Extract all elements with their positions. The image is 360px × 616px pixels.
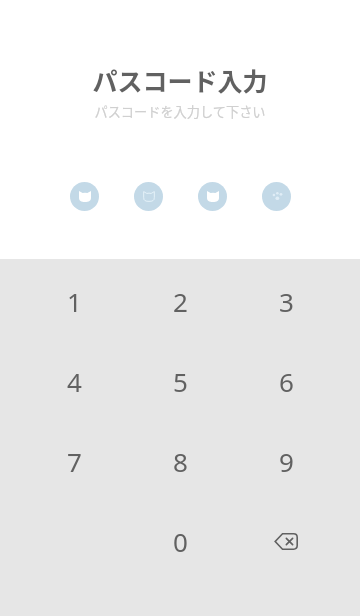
staticText: 8 (173, 444, 188, 479)
staticText: パスコード入力 (92, 62, 268, 98)
button[interactable]: 6 (233, 341, 339, 421)
staticText: 9 (279, 444, 294, 479)
other: Passcode digit (134, 182, 163, 211)
button[interactable]: 2 (127, 261, 233, 341)
staticText: 0 (173, 524, 188, 559)
staticText: 5 (173, 364, 188, 399)
staticText: パスコードを入力して下さい (94, 102, 266, 121)
button[interactable]: 1 (21, 261, 127, 341)
button[interactable]: 7 (21, 421, 127, 501)
button[interactable]: 4 (21, 341, 127, 421)
other: Passcode digit (198, 182, 227, 211)
button[interactable]: 5 (127, 341, 233, 421)
button[interactable]: Backspace (233, 501, 339, 581)
button[interactable]: 0 (127, 501, 233, 581)
button[interactable]: 3 (233, 261, 339, 341)
staticText: 1 (67, 284, 82, 319)
staticText: 4 (67, 364, 82, 399)
staticText: 2 (173, 284, 188, 319)
staticText: 6 (279, 364, 294, 399)
staticText: 3 (279, 284, 294, 319)
other: Passcode digit (70, 182, 99, 211)
other: Passcode digit (262, 182, 291, 211)
button[interactable]: 9 (233, 421, 339, 501)
staticText: 7 (67, 444, 82, 479)
button[interactable]: 8 (127, 421, 233, 501)
